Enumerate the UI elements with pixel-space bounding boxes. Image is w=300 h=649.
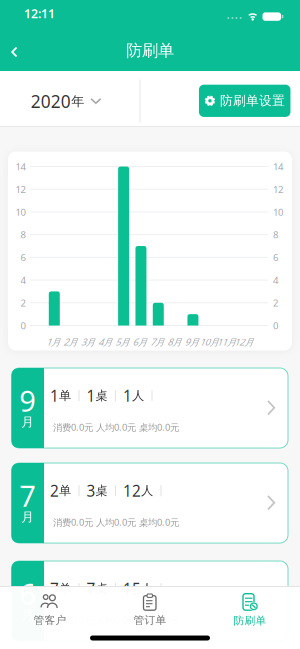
staticText: 0 (273, 319, 278, 332)
staticText: 月 (21, 509, 34, 525)
staticText: 10 (273, 206, 283, 218)
staticText: 9 (19, 381, 36, 420)
staticText: 4 (20, 274, 25, 286)
staticText: 防刷单 (233, 614, 266, 627)
staticText: 消费0.0元 人均0.0元 桌均0.0元 (53, 421, 179, 433)
staticText: 2 (50, 480, 59, 501)
staticText: 7 (50, 578, 59, 599)
staticText: 6月 (133, 336, 147, 348)
button[interactable]: Back (8, 41, 28, 63)
staticText: 8 (20, 228, 25, 241)
staticText: 0 (20, 319, 25, 332)
staticText: 14 (15, 160, 25, 173)
staticText: 1 (50, 385, 59, 406)
staticText: 6 (19, 574, 36, 613)
staticText: 4月 (98, 336, 112, 348)
button[interactable]: 7 (11, 463, 288, 543)
staticText: 防刷单设置 (220, 93, 285, 109)
staticText: 防刷单 (126, 40, 174, 60)
staticText: 12月 (234, 336, 253, 348)
staticText: 单 (59, 388, 71, 403)
staticText: 11月 (217, 336, 236, 348)
staticText: 10月 (200, 336, 219, 348)
staticText: 3月 (81, 336, 95, 348)
staticText: 年 (71, 93, 84, 109)
staticText: 7 (86, 578, 95, 599)
staticText: 2月 (64, 336, 78, 348)
staticText: 8月 (168, 336, 182, 348)
staticText: 2 (273, 296, 278, 309)
staticText: 12 (15, 183, 25, 195)
button[interactable]: 管订单 (105, 588, 195, 632)
button[interactable]: 管客户 (5, 588, 95, 632)
staticText: 管客户 (33, 614, 66, 627)
staticText: 5月 (116, 336, 130, 348)
staticText: 12 (123, 480, 141, 501)
staticText: 1 (123, 385, 132, 406)
staticText: 7 (19, 476, 36, 515)
staticText: 人 (141, 581, 153, 596)
staticText: 8 (273, 228, 278, 241)
staticText: 单 (59, 483, 71, 498)
staticText: 6 (20, 251, 25, 264)
staticText: 单 (59, 581, 71, 596)
staticText: 消费0.0元 人均0.0元 桌均0.0元 (53, 614, 179, 626)
staticText: 消费0.0元 人均0.0元 桌均0.0元 (53, 516, 179, 528)
staticText: 1 (86, 385, 95, 406)
staticText: 管订单 (133, 614, 166, 627)
staticText: 人 (141, 483, 153, 498)
staticText: 12 (273, 183, 283, 195)
staticText: 2020 (31, 90, 71, 113)
staticText: 人 (132, 388, 144, 403)
staticText: 7月 (150, 336, 164, 348)
staticText: 10 (15, 206, 25, 218)
staticText: 2 (20, 296, 25, 309)
staticText: 14 (273, 160, 283, 173)
staticText: 9月 (185, 336, 199, 348)
staticText: 4 (273, 274, 278, 286)
staticText: 15 (123, 578, 141, 599)
staticText: 月 (21, 414, 34, 430)
staticText: 12:11 (24, 5, 55, 22)
staticText: 桌 (95, 483, 107, 498)
button[interactable]: 2020 (11, 73, 121, 129)
button[interactable]: 6 (11, 561, 288, 641)
staticText: 6 (273, 251, 278, 264)
button[interactable]: 9 (11, 368, 288, 448)
staticText: 桌 (95, 581, 107, 596)
staticText: 1月 (46, 336, 60, 348)
staticText: 桌 (95, 388, 107, 403)
button[interactable]: 防刷单设置 (199, 85, 290, 117)
staticText: 3 (86, 480, 95, 501)
button[interactable]: 防刷单 (205, 588, 295, 632)
